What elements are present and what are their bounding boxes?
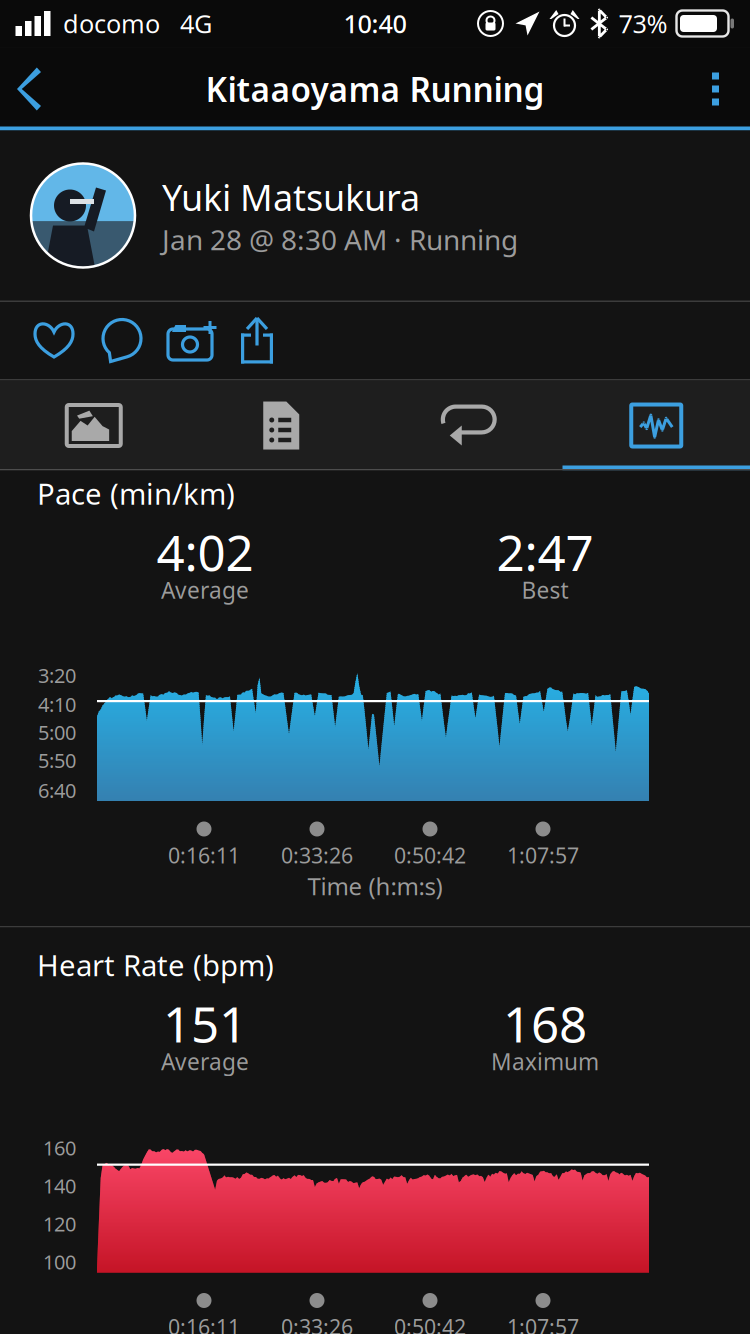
button[interactable]: More options [681, 47, 750, 130]
button[interactable]: Like [20, 300, 88, 380]
staticText: Average [161, 575, 249, 605]
button[interactable]: Charts [562, 380, 750, 470]
button[interactable]: Comment [88, 300, 156, 380]
staticText: 0:50:42 [394, 1312, 466, 1334]
button[interactable]: Map [0, 380, 187, 470]
button[interactable]: Share [224, 300, 290, 380]
button[interactable]: Laps [375, 380, 562, 470]
staticText: 2:47 [496, 519, 593, 584]
staticText: 168 [503, 990, 587, 1056]
staticText: 6:40 [38, 777, 76, 804]
staticText: Average [161, 1046, 249, 1077]
staticText: Time (h:m:s) [307, 870, 442, 902]
staticText: 0:16:11 [168, 1312, 240, 1334]
staticText: Pace (min/km) [37, 474, 235, 513]
staticText: Maximum [491, 1046, 599, 1077]
staticText: 4:02 [156, 519, 253, 584]
staticText: docomo [63, 7, 160, 40]
staticText: 100 [43, 1248, 76, 1275]
staticText: 160 [43, 1134, 76, 1161]
button[interactable]: Add photo [156, 300, 224, 380]
staticText: 73% [618, 7, 667, 40]
staticText: 5:00 [38, 719, 76, 746]
staticText: 0:50:42 [394, 841, 466, 869]
staticText: 1:07:57 [507, 841, 579, 869]
staticText: 4G [180, 7, 212, 40]
staticText: Best [521, 575, 568, 605]
button[interactable]: Yuki Matsukura, Jan 28 at 8:30 AM, Runni… [0, 130, 750, 300]
staticText: 0:33:26 [281, 841, 353, 869]
staticText: 1:07:57 [507, 1312, 579, 1334]
staticText: 120 [43, 1210, 76, 1237]
staticText: 0:16:11 [168, 841, 240, 869]
button[interactable]: Back [0, 47, 71, 130]
staticText: Jan 28 @ 8:30 AM · Running [162, 221, 518, 258]
staticText: Yuki Matsukura [162, 173, 420, 221]
staticText: Heart Rate (bpm) [37, 945, 274, 984]
staticText: 3:20 [38, 662, 76, 689]
staticText: 5:50 [38, 747, 76, 774]
staticText: 4:10 [38, 691, 76, 718]
staticText: 10:40 [343, 7, 406, 40]
button[interactable]: Splits [187, 380, 375, 470]
staticText: 0:33:26 [281, 1312, 353, 1334]
staticText: Kitaaoyama Running [205, 67, 544, 111]
staticText: 151 [163, 990, 247, 1056]
staticText: 140 [43, 1172, 76, 1199]
